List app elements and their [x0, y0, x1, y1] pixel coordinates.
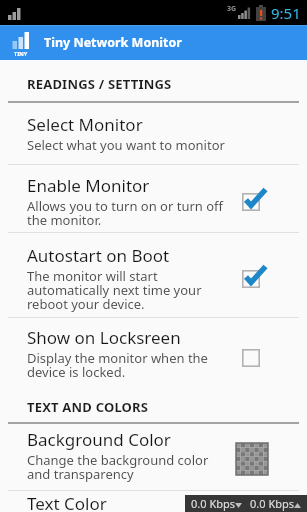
button[interactable]: Enable Monitor	[0, 165, 307, 232]
button[interactable]	[236, 443, 268, 475]
button[interactable]	[242, 263, 268, 289]
staticText: Tiny Network Monitor	[44, 34, 182, 51]
staticText: Select Monitor	[27, 113, 143, 136]
button[interactable]	[242, 186, 268, 212]
staticText: The monitor will start automatically nex…	[27, 267, 202, 313]
staticText: 0.0 Kbps	[250, 496, 294, 511]
staticText: Background Color	[27, 428, 171, 451]
button[interactable]: Autostart on Boot	[0, 233, 307, 317]
button[interactable]: Text Color	[27, 492, 107, 512]
button[interactable]: Show on Locksreen	[0, 318, 307, 387]
button[interactable]: Select Monitor	[0, 103, 307, 164]
staticText: 3G	[227, 4, 237, 14]
staticText: 9:51	[271, 3, 301, 23]
staticText: TINY	[14, 50, 28, 57]
button[interactable]: Tiny Network Monitor	[0, 25, 307, 60]
staticText: Show on Locksreen	[27, 326, 181, 349]
staticText: Autostart on Boot	[27, 244, 170, 267]
staticText: Enable Monitor	[27, 174, 150, 197]
button[interactable]: Background Color	[0, 424, 307, 490]
staticText: READINGS / SETTINGS	[27, 75, 172, 93]
staticText: 0.0 Kbps	[191, 496, 235, 511]
staticText: Allows you to turn on or turn off the mo…	[27, 197, 224, 229]
button[interactable]	[242, 342, 268, 368]
staticText: TEXT AND COLORS	[27, 398, 149, 416]
staticText: Display the monitor when the device is l…	[27, 349, 208, 381]
staticText: Change the background color and transpar…	[27, 451, 209, 483]
staticText: Select what you want to monitor	[27, 136, 225, 154]
